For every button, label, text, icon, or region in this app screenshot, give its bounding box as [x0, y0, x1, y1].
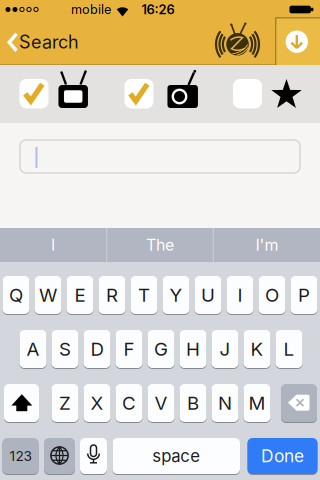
staticText: K — [250, 338, 263, 360]
staticText: I — [237, 284, 242, 306]
staticText: E — [74, 284, 85, 306]
staticText: D — [90, 338, 103, 360]
staticText: B — [187, 392, 199, 414]
staticText: Search — [19, 31, 79, 53]
staticText: U — [201, 284, 215, 306]
staticText: S — [59, 338, 71, 360]
staticText: A — [26, 338, 39, 360]
staticText: N — [218, 392, 232, 414]
staticText: L — [283, 338, 294, 360]
staticText: space — [152, 446, 200, 466]
staticText: Done — [261, 445, 304, 466]
staticText: Y — [169, 284, 182, 306]
staticText: H — [186, 338, 200, 360]
staticText: J — [219, 338, 230, 360]
staticText: C — [122, 392, 136, 414]
staticText: W — [39, 284, 57, 306]
staticText: T — [138, 284, 150, 306]
staticText: G — [154, 338, 168, 360]
staticText: 123 — [9, 448, 31, 464]
staticText: O — [265, 284, 279, 306]
staticText: P — [298, 284, 310, 306]
staticText: X — [90, 392, 103, 414]
staticText: 16:26 — [141, 2, 174, 17]
staticText: F — [123, 338, 134, 360]
staticText: Q — [9, 284, 23, 306]
staticText: mobile — [71, 2, 111, 17]
staticText: I — [51, 235, 55, 255]
staticText: The — [146, 235, 174, 255]
staticText: I'm — [255, 235, 278, 255]
staticText: M — [248, 392, 265, 414]
staticText: Z — [59, 392, 71, 414]
staticText: R — [106, 284, 118, 306]
staticText: V — [154, 392, 167, 414]
